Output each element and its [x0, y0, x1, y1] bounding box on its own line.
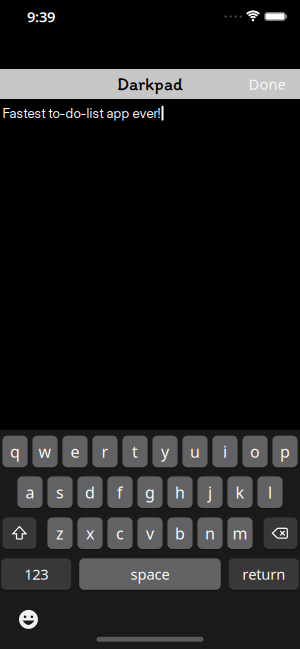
- staticText: d: [85, 482, 95, 503]
- staticText: Fastest to-do-list app ever!: [2, 105, 160, 121]
- staticText: b: [175, 523, 185, 544]
- button[interactable]: Shift: [2, 517, 36, 549]
- button[interactable]: Done: [248, 74, 300, 94]
- button[interactable]: e: [62, 436, 88, 467]
- button[interactable]: l: [257, 476, 283, 508]
- button[interactable]: b: [167, 517, 193, 549]
- button[interactable]: t: [122, 436, 148, 467]
- staticText: s: [56, 482, 64, 503]
- staticText: w: [38, 441, 51, 462]
- staticText: r: [101, 441, 108, 462]
- staticText: o: [250, 441, 260, 462]
- button[interactable]: g: [137, 476, 163, 508]
- staticText: h: [175, 482, 185, 503]
- button[interactable]: 123: [1, 558, 71, 590]
- staticText: j: [208, 482, 212, 503]
- button[interactable]: i: [212, 436, 238, 467]
- button[interactable]: c: [107, 517, 133, 549]
- staticText: m: [232, 523, 247, 544]
- button[interactable]: d: [77, 476, 103, 508]
- staticText: g: [145, 482, 155, 503]
- button[interactable]: h: [167, 476, 193, 508]
- staticText: f: [117, 482, 123, 503]
- button[interactable]: f: [107, 476, 133, 508]
- staticText: z: [56, 523, 64, 544]
- staticText: y: [161, 441, 169, 462]
- button[interactable]: w: [32, 436, 58, 467]
- staticText: space: [130, 564, 169, 584]
- staticText: v: [146, 523, 154, 544]
- staticText: Done: [248, 74, 285, 94]
- button[interactable]: j: [197, 476, 223, 508]
- staticText: x: [86, 523, 94, 544]
- staticText: e: [70, 441, 79, 462]
- staticText: t: [132, 441, 138, 462]
- button[interactable]: v: [137, 517, 163, 549]
- staticText: n: [205, 523, 215, 544]
- button[interactable]: p: [272, 436, 298, 467]
- staticText: p: [280, 441, 290, 462]
- button[interactable]: q: [2, 436, 28, 467]
- button[interactable]: x: [77, 517, 103, 549]
- staticText: Darkpad: [117, 73, 183, 95]
- button[interactable]: k: [227, 476, 253, 508]
- staticText: 123: [24, 564, 48, 584]
- button[interactable]: space: [79, 558, 221, 590]
- staticText: i: [223, 441, 227, 462]
- button[interactable]: o: [242, 436, 268, 467]
- button[interactable]: r: [92, 436, 118, 467]
- staticText: u: [190, 441, 200, 462]
- button[interactable]: Emoji: [19, 610, 38, 629]
- button[interactable]: Delete: [264, 517, 298, 549]
- staticText: 9:39: [27, 7, 55, 26]
- staticText: k: [235, 482, 244, 503]
- staticText: c: [116, 523, 124, 544]
- button[interactable]: y: [152, 436, 178, 467]
- button[interactable]: s: [47, 476, 73, 508]
- staticText: a: [25, 482, 34, 503]
- button[interactable]: z: [47, 517, 73, 549]
- button[interactable]: u: [182, 436, 208, 467]
- staticText: return: [242, 564, 285, 584]
- staticText: q: [10, 441, 20, 462]
- button[interactable]: m: [227, 517, 253, 549]
- button[interactable]: n: [197, 517, 223, 549]
- button[interactable]: return: [229, 558, 299, 590]
- button[interactable]: a: [17, 476, 43, 508]
- staticText: l: [268, 482, 272, 503]
